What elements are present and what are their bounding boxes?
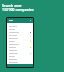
button[interactable]: [7, 61, 33, 64]
staticText: Search over: [2, 3, 22, 8]
button[interactable]: [7, 28, 33, 31]
button[interactable]: [7, 40, 33, 43]
button[interactable]: [7, 31, 33, 34]
button[interactable]: [7, 43, 33, 46]
button[interactable]: [7, 37, 33, 40]
button[interactable]: [7, 52, 33, 55]
button[interactable]: [7, 49, 33, 52]
button[interactable]: [7, 34, 33, 37]
button[interactable]: [7, 55, 33, 58]
button[interactable]: [7, 25, 33, 28]
button[interactable]: [7, 46, 33, 49]
button[interactable]: More: [7, 18, 33, 23]
staticText: 130'000 companies: [2, 7, 34, 12]
button[interactable]: [7, 58, 33, 61]
